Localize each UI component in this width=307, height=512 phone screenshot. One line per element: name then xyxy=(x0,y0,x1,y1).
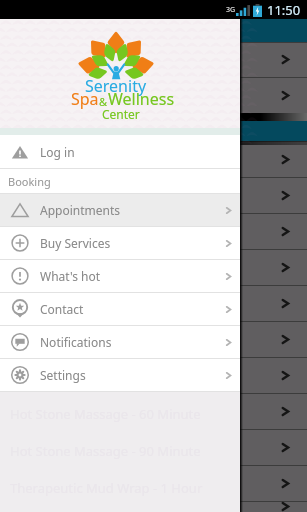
staticText: Booking xyxy=(8,174,51,189)
staticText: Notifications xyxy=(40,334,112,350)
staticText: Buy Services xyxy=(40,235,111,251)
staticText: What's hot xyxy=(40,268,101,284)
button[interactable]: Hot Stone Massage - 30... xyxy=(0,77,307,113)
button[interactable]: Hot Stone Massage - 60... xyxy=(0,42,307,77)
button[interactable]: Notifications xyxy=(0,326,240,358)
staticText: Log in xyxy=(40,144,75,160)
button[interactable]: Contact xyxy=(0,293,240,325)
staticText: Wellness xyxy=(108,88,175,110)
staticText: Center xyxy=(102,106,140,122)
staticText: Serenity xyxy=(85,75,147,97)
button[interactable] xyxy=(0,465,307,501)
button[interactable]: Buy Services xyxy=(0,227,240,259)
button[interactable] xyxy=(0,141,307,177)
staticText: 3G xyxy=(226,5,236,15)
button[interactable]: Appointments xyxy=(0,194,240,226)
staticText: Appointments xyxy=(40,202,121,218)
button[interactable] xyxy=(0,429,307,465)
staticText: & xyxy=(99,94,108,109)
button[interactable] xyxy=(0,393,307,429)
staticText: Hot Stone Massage - 30... xyxy=(10,86,165,104)
button[interactable] xyxy=(0,213,307,249)
staticText: Hot Stone Massage - 60... xyxy=(10,51,165,69)
button[interactable] xyxy=(0,357,307,393)
staticText: Spa xyxy=(71,88,99,110)
button[interactable] xyxy=(0,285,307,321)
button[interactable]: Settings xyxy=(0,359,240,391)
button[interactable]: What's hot xyxy=(0,260,240,292)
staticText: 11:50 xyxy=(267,1,301,19)
staticText: Settings xyxy=(40,367,86,383)
button[interactable] xyxy=(0,249,307,285)
button[interactable] xyxy=(0,501,307,512)
button[interactable]: Log in xyxy=(0,135,240,168)
staticText: Contact xyxy=(40,301,84,317)
button[interactable] xyxy=(0,177,307,213)
button[interactable] xyxy=(0,321,307,357)
